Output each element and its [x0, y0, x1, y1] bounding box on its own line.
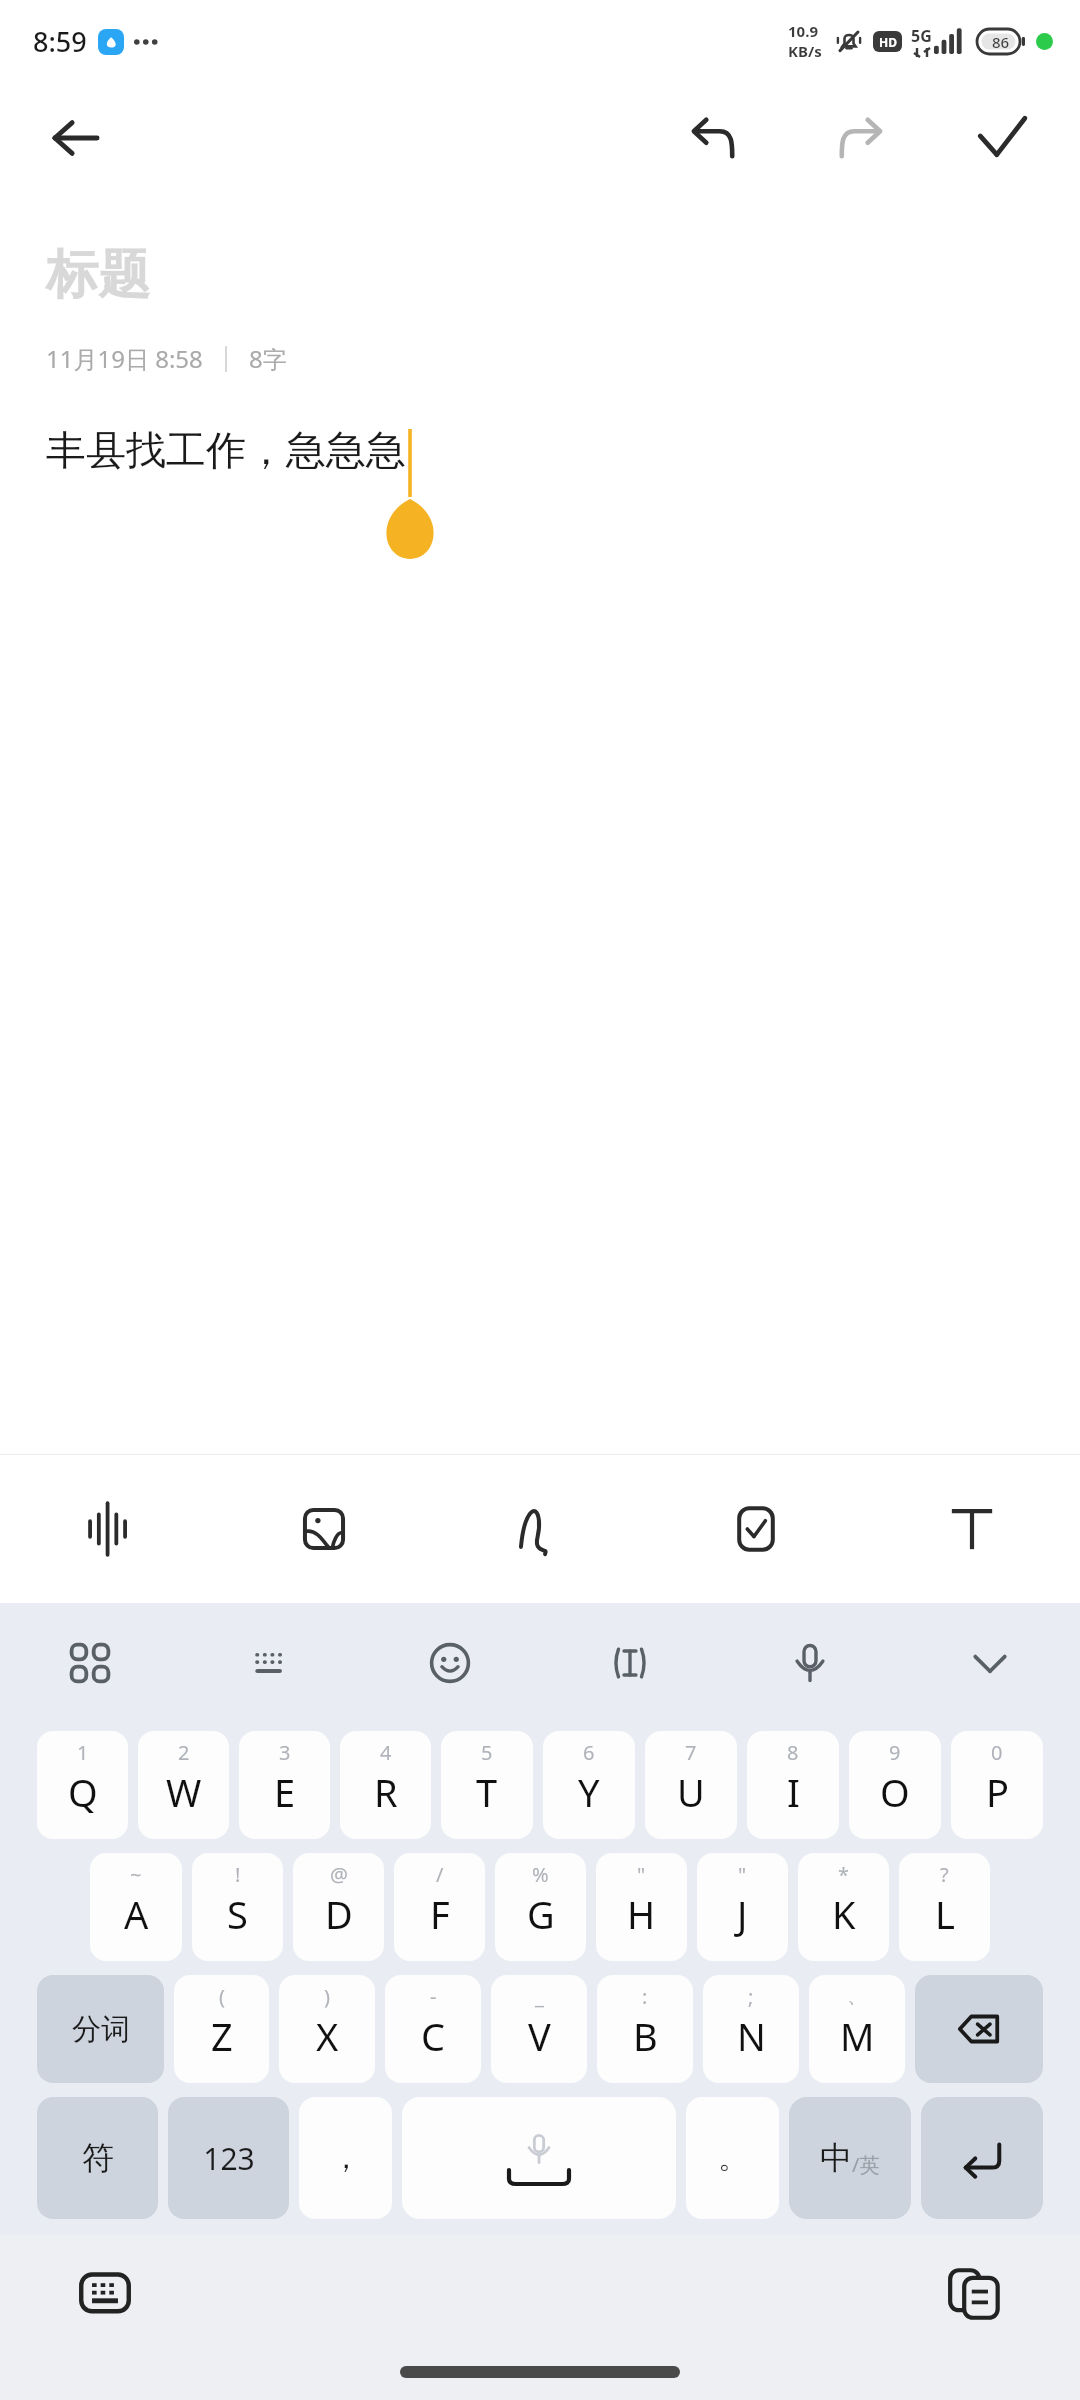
staticText: 5G — [911, 25, 932, 47]
button[interactable]: - — [385, 1975, 481, 2083]
button[interactable]: ~ — [90, 1853, 182, 1961]
staticText: % — [532, 1861, 549, 1888]
staticText: 3 — [279, 1739, 291, 1766]
button[interactable]: Insert image — [216, 1455, 432, 1603]
button[interactable]: 3 — [239, 1731, 330, 1839]
button[interactable]: " — [697, 1853, 788, 1961]
staticText: M — [840, 2010, 875, 2062]
button[interactable]: Done — [960, 96, 1044, 180]
button[interactable]: ( — [174, 1975, 269, 2083]
button[interactable]: 2 — [138, 1731, 229, 1839]
staticText: 4 — [380, 1739, 392, 1766]
staticText: S — [227, 1888, 248, 1940]
staticText: ! — [235, 1861, 241, 1888]
button[interactable]: 9 — [849, 1731, 941, 1839]
staticText: ~ — [130, 1861, 142, 1888]
staticText: V — [528, 2010, 551, 2062]
button[interactable]: Emoji — [360, 1603, 540, 1723]
staticText: 8 — [787, 1739, 799, 1766]
staticText: 8字 — [249, 342, 287, 375]
staticText: H — [627, 1888, 656, 1940]
staticText: G — [527, 1888, 555, 1940]
button[interactable]: 8 — [747, 1731, 839, 1839]
staticText: 6 — [583, 1739, 595, 1766]
staticText: 7 — [685, 1739, 697, 1766]
staticText: P — [986, 1766, 1009, 1818]
button[interactable]: 6 — [543, 1731, 635, 1839]
button[interactable]: 、 — [809, 1975, 905, 2083]
staticText: : — [642, 1983, 648, 2010]
staticText: 符 — [82, 2138, 114, 2178]
staticText: ， — [331, 2139, 361, 2177]
button[interactable]: Backspace — [915, 1975, 1043, 2083]
button[interactable]: Switch keyboard — [66, 2255, 144, 2333]
button[interactable]: 。 — [686, 2097, 779, 2219]
staticText: /英 — [852, 2151, 880, 2178]
button[interactable]: 4 — [340, 1731, 431, 1839]
staticText: @ — [330, 1861, 348, 1888]
button[interactable]: Voice input — [720, 1603, 900, 1723]
staticText: E — [274, 1766, 296, 1818]
staticText: / — [436, 1861, 444, 1888]
staticText: F — [430, 1888, 450, 1940]
button[interactable]: Redo — [818, 96, 902, 180]
staticText: " — [637, 1861, 646, 1888]
staticText: W — [166, 1766, 202, 1818]
button[interactable]: Edit text — [540, 1603, 720, 1723]
staticText: Z — [211, 2010, 233, 2062]
button[interactable]: : — [597, 1975, 693, 2083]
button[interactable]: 1 — [37, 1731, 128, 1839]
staticText: O — [880, 1766, 910, 1818]
button[interactable]: Back — [38, 100, 114, 176]
button[interactable]: * — [798, 1853, 889, 1961]
button[interactable]: " — [596, 1853, 687, 1961]
button[interactable]: 123 — [168, 2097, 289, 2219]
button[interactable]: Apps — [0, 1603, 180, 1723]
button[interactable]: Undo — [672, 96, 756, 180]
button[interactable]: ; — [703, 1975, 799, 2083]
button[interactable]: ， — [299, 2097, 392, 2219]
staticText: R — [374, 1766, 398, 1818]
staticText: * — [838, 1861, 850, 1888]
button[interactable]: ) — [279, 1975, 375, 2083]
button[interactable]: Handwriting — [432, 1455, 648, 1603]
staticText: KB/s — [788, 41, 822, 61]
button[interactable]: ! — [192, 1853, 283, 1961]
staticText: 10.9 — [788, 21, 818, 41]
staticText: 2 — [178, 1739, 190, 1766]
button[interactable]: 7 — [645, 1731, 737, 1839]
button[interactable]: Hide keyboard — [900, 1603, 1080, 1723]
staticText: 123 — [203, 2138, 255, 2179]
button[interactable]: Enter — [921, 2097, 1043, 2219]
staticText: 8:59 — [33, 23, 87, 60]
button[interactable]: Checklist — [648, 1455, 864, 1603]
button[interactable]: 符 — [37, 2097, 158, 2219]
staticText: 5 — [481, 1739, 493, 1766]
staticText: 1 — [77, 1739, 89, 1766]
button[interactable]: Keyboard layout — [180, 1603, 360, 1723]
button[interactable]: @ — [293, 1853, 384, 1961]
button[interactable]: 0 — [951, 1731, 1043, 1839]
staticText: 标题 — [46, 242, 150, 308]
staticText: _ — [535, 1983, 544, 2010]
button[interactable]: % — [495, 1853, 586, 1961]
staticText: K — [832, 1888, 856, 1940]
button[interactable]: 分词 — [37, 1975, 164, 2083]
button[interactable]: Voice recording — [0, 1455, 216, 1603]
button[interactable]: Clipboard — [936, 2255, 1014, 2333]
staticText: Y — [578, 1766, 600, 1818]
staticText: I — [787, 1766, 800, 1818]
button[interactable]: 5 — [441, 1731, 533, 1839]
staticText: Q — [68, 1766, 98, 1818]
staticText: 0 — [991, 1739, 1003, 1766]
staticText: - — [430, 1983, 437, 2010]
button[interactable]: / — [394, 1853, 485, 1961]
button[interactable]: _ — [491, 1975, 587, 2083]
button[interactable]: 中 — [789, 2097, 911, 2219]
staticText: A — [124, 1888, 149, 1940]
staticText: B — [633, 2010, 658, 2062]
button[interactable]: Space — [402, 2097, 676, 2219]
staticText: 中 — [820, 2138, 852, 2178]
button[interactable]: Text format — [864, 1455, 1080, 1603]
button[interactable]: ? — [899, 1853, 990, 1961]
